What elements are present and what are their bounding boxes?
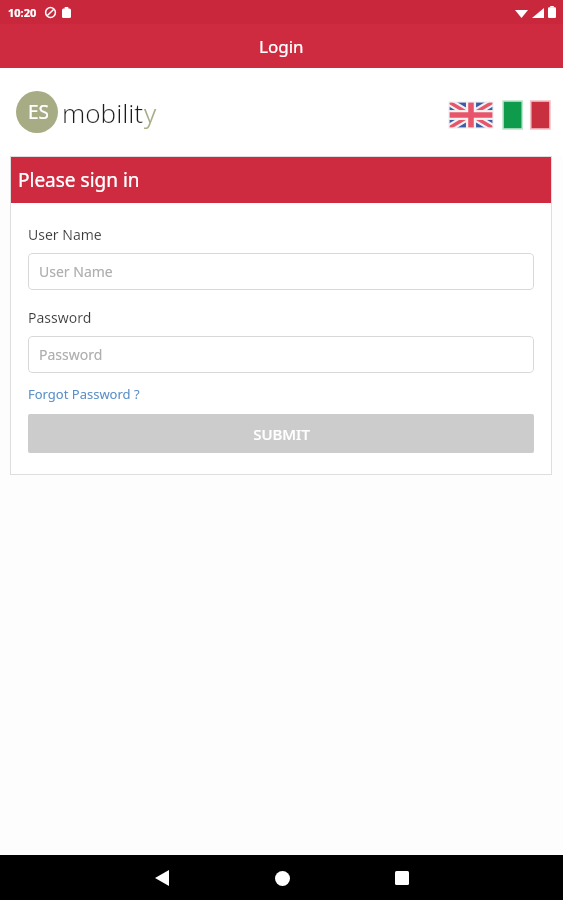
button[interactable]: Back	[140, 856, 184, 900]
staticText: Login	[259, 35, 304, 58]
button[interactable]: ES	[16, 91, 157, 133]
button[interactable]: Italian language	[502, 100, 550, 130]
staticText: SUBMIT	[253, 424, 310, 444]
button[interactable]: English language	[448, 101, 494, 129]
button[interactable]: SUBMIT	[28, 414, 534, 453]
staticText: ES	[28, 99, 49, 125]
staticText: y	[144, 95, 157, 130]
staticText: User Name	[39, 262, 113, 281]
button[interactable]: Forgot Password ?	[28, 385, 140, 403]
staticText: mobilit	[62, 95, 144, 130]
staticText: Forgot Password ?	[28, 385, 140, 403]
button[interactable]: Password	[28, 336, 534, 373]
staticText: Password	[39, 345, 103, 364]
button[interactable]: Recent apps	[380, 856, 424, 900]
staticText: Password	[28, 308, 92, 327]
staticText: 10:20	[8, 5, 37, 20]
staticText: User Name	[28, 225, 102, 244]
staticText: Please sign in	[18, 167, 140, 193]
button[interactable]: Home	[260, 856, 304, 900]
button[interactable]: User Name	[28, 253, 534, 290]
